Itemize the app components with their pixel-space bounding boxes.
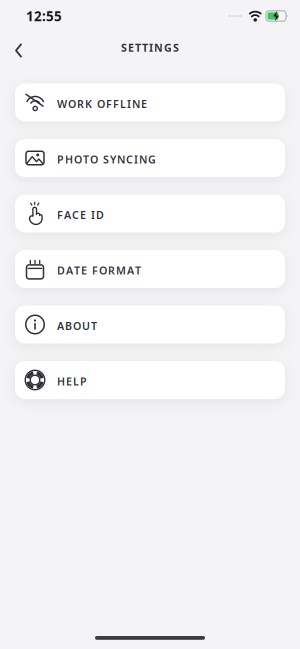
- button[interactable]: H E L P: [15, 361, 285, 399]
- button[interactable]: P H O T O S Y N C I N G: [15, 139, 285, 177]
- button[interactable]: W O R K O F F L I N E: [15, 83, 285, 121]
- staticText: W O R K O F F L I N E: [57, 97, 147, 111]
- button[interactable]: Back: [0, 32, 22, 62]
- button[interactable]: A B O U T: [15, 305, 285, 343]
- staticText: H E L P: [57, 374, 87, 388]
- staticText: F A C E I D: [57, 208, 104, 222]
- staticText: D A T E F O R M A T: [57, 263, 141, 277]
- staticText: 12:55: [26, 7, 62, 25]
- staticText: P H O T O S Y N C I N G: [57, 152, 156, 166]
- button[interactable]: D A T E F O R M A T: [15, 250, 285, 288]
- staticText: A B O U T: [57, 319, 97, 333]
- staticText: S E T T I N G S: [121, 40, 179, 55]
- button[interactable]: F A C E I D: [15, 194, 285, 232]
